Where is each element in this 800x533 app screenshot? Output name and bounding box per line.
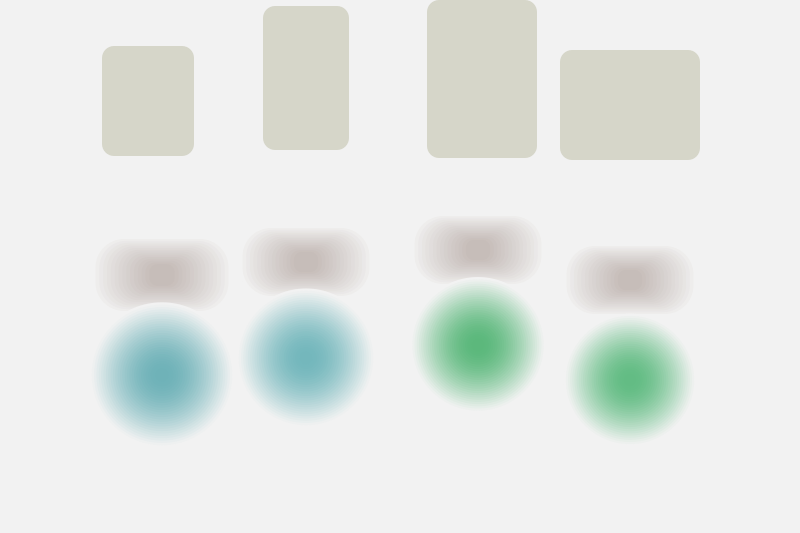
button[interactable]: Item 3	[0, 0, 800, 533]
button[interactable]: Item 2	[0, 0, 800, 533]
button[interactable]: Item 1	[0, 0, 800, 533]
button[interactable]: Item 4	[0, 0, 800, 533]
